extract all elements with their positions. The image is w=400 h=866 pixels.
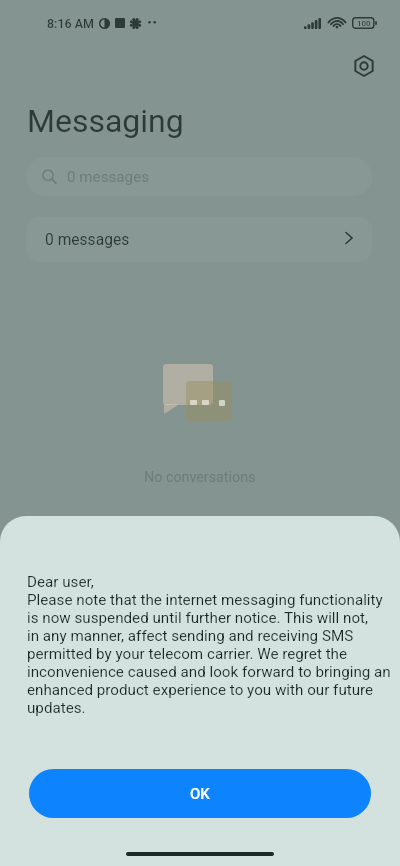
staticText: Dear user, Please note that the internet… [27,573,391,717]
button[interactable]: 0 messages [26,157,372,196]
staticText: 0 messages [45,231,130,249]
button[interactable]: OK [29,769,371,818]
staticText: OK [190,785,210,803]
staticText: 100 [357,19,371,28]
staticText: Messaging [27,102,184,140]
button[interactable]: 0 messages [26,217,372,262]
staticText: 0 messages [67,168,150,186]
staticText: 8:16 AM [47,16,94,31]
staticText: No conversations [144,469,256,486]
button[interactable]: Settings [346,48,382,84]
